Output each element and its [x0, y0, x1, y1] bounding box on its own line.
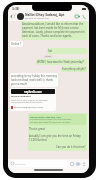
- staticText: That is great: [29, 127, 45, 131]
- button[interactable]: Nallini Dhay Sabrang, Awi: [28, 113, 87, 151]
- button[interactable]: WOW!!, how was the Shab yesterday?: [36, 59, 87, 65]
- button[interactable]: nephrolic.com: [10, 88, 56, 111]
- staticText: Today: [45, 55, 52, 58]
- staticText: Invoice statement: [11, 95, 31, 98]
- staticText: nephrolic.com: [24, 90, 42, 93]
- button[interactable]: Voice message: [81, 161, 87, 167]
- button[interactable]: Attach file: [69, 161, 75, 167]
- button[interactable]: according to my hubby this morning looks…: [10, 73, 58, 87]
- button[interactable]: Call: [81, 12, 87, 21]
- button[interactable]: Message: [10, 160, 68, 167]
- staticText: tap here for contact info: [25, 17, 49, 20]
- staticText: Sat: [48, 49, 52, 53]
- staticText: 3:38: [12, 6, 19, 11]
- button[interactable]: Online ?: [10, 41, 23, 47]
- staticText: according to my hubby this morning looks…: [30, 118, 72, 124]
- staticText: Everything alright?: [62, 67, 86, 71]
- button[interactable]: Back: [9, 12, 14, 21]
- staticText: Assalamualaikum, I would like to inform …: [22, 22, 86, 38]
- button[interactable]: Video call: [74, 12, 81, 21]
- staticText: Online ?: [11, 42, 22, 46]
- staticText: Invoice Dwg Services 2.pdf: [14, 106, 43, 109]
- staticText: 1: [14, 15, 16, 19]
- staticText: Thank you for your business, we apprecia…: [11, 99, 48, 104]
- button[interactable]: Camera: [75, 161, 81, 167]
- staticText: Can you do it this time?: [56, 145, 86, 149]
- button[interactable]: Everything alright?: [61, 66, 87, 72]
- staticText: Message: [15, 162, 26, 165]
- staticText: Nallini Dhay Sabrang, Awi: [30, 115, 61, 118]
- staticText: Actually I can give you the time on Frid…: [29, 134, 81, 142]
- button[interactable]: Assalamualaikum, I would like to inform …: [21, 21, 87, 40]
- staticText: Nallini Dhay Sadaraj, Apt: [25, 13, 65, 17]
- button[interactable]: Sat: [47, 48, 87, 54]
- staticText: according to my hubby this morning looks…: [11, 74, 57, 86]
- staticText: WOW!!, how was the Shab yesterday?: [37, 60, 84, 64]
